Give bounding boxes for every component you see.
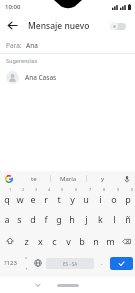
button[interactable]: s: [13, 208, 26, 230]
staticText: d: [30, 213, 36, 225]
button[interactable]: ?123: [0, 252, 20, 274]
staticText: 4: [48, 187, 51, 192]
staticText: Para:: [6, 41, 22, 50]
staticText: u: [83, 193, 89, 205]
button[interactable]: l: [107, 208, 121, 230]
staticText: n: [93, 235, 99, 247]
staticText: o: [111, 193, 117, 205]
staticText: 0: [131, 187, 134, 192]
staticText: l: [113, 213, 116, 225]
staticText: 7: [89, 187, 92, 192]
staticText: e: [30, 193, 36, 205]
button[interactable]: ES - SA: [46, 258, 94, 269]
button[interactable]: 5: [52, 186, 65, 208]
staticText: ,: [26, 263, 28, 271]
button[interactable]: Back: [0, 13, 25, 38]
button[interactable]: 9: [107, 186, 121, 208]
button[interactable]: 8: [93, 186, 107, 208]
staticText: °: [25, 256, 28, 263]
button[interactable]: c: [47, 230, 61, 252]
button[interactable]: f: [39, 208, 52, 230]
staticText: v: [66, 235, 71, 247]
staticText: b: [79, 235, 85, 247]
button[interactable]: g: [52, 208, 65, 230]
staticText: f: [44, 213, 48, 225]
button[interactable]: y: [87, 171, 119, 186]
button[interactable]: 2: [13, 186, 26, 208]
staticText: ?123: [4, 259, 17, 267]
button[interactable]: b: [75, 230, 89, 252]
staticText: María: [60, 175, 77, 183]
staticText: ES - SA: [63, 261, 78, 267]
staticText: ñ: [125, 213, 131, 225]
staticText: k: [98, 213, 103, 225]
button[interactable]: m: [103, 230, 117, 252]
staticText: 5: [61, 187, 64, 192]
button[interactable]: Hide keyboard: [33, 280, 43, 290]
staticText: w: [16, 193, 24, 205]
button[interactable]: 6: [65, 186, 79, 208]
staticText: i: [99, 193, 102, 205]
button[interactable]: Voice input: [119, 171, 135, 186]
button[interactable]: h: [65, 208, 79, 230]
staticText: c: [52, 235, 57, 247]
button[interactable]: v: [61, 230, 75, 252]
button[interactable]: 4: [39, 186, 52, 208]
staticText: y: [101, 175, 105, 183]
staticText: s: [17, 213, 22, 225]
staticText: t: [57, 193, 61, 205]
staticText: a: [4, 213, 10, 225]
staticText: m: [106, 235, 115, 247]
button[interactable]: Google: [0, 171, 18, 186]
staticText: p: [125, 193, 131, 205]
staticText: 3: [35, 187, 38, 192]
button[interactable]: x: [33, 230, 47, 252]
staticText: x: [38, 235, 43, 247]
staticText: g: [56, 213, 62, 225]
staticText: 6: [75, 187, 78, 192]
button[interactable]: Ana Casas: [0, 67, 135, 87]
staticText: j: [85, 213, 88, 225]
button[interactable]: 1: [0, 186, 13, 208]
button[interactable]: Backspace: [117, 230, 135, 252]
button[interactable]: .: [96, 252, 108, 274]
button[interactable]: a: [0, 208, 13, 230]
staticText: 10:00: [5, 3, 21, 11]
button[interactable]: Change language: [32, 252, 44, 274]
button[interactable]: 0: [121, 186, 135, 208]
staticText: Ana: [26, 41, 38, 50]
staticText: 1: [9, 187, 12, 192]
staticText: te: [31, 175, 37, 183]
button[interactable]: Shift: [0, 230, 19, 252]
staticText: Mensaje nuevo: [28, 20, 90, 32]
staticText: y: [70, 193, 75, 205]
staticText: q: [4, 193, 10, 205]
staticText: h: [69, 213, 75, 225]
button[interactable]: n: [89, 230, 103, 252]
staticText: Sugerencias: [6, 57, 38, 64]
button[interactable]: María: [51, 171, 86, 186]
staticText: 9: [117, 187, 120, 192]
button[interactable]: j: [79, 208, 93, 230]
button[interactable]: z: [19, 230, 33, 252]
staticText: z: [24, 235, 29, 247]
button[interactable]: d: [26, 208, 39, 230]
button[interactable]: 3: [26, 186, 39, 208]
button[interactable]: °: [20, 252, 32, 274]
staticText: 2: [22, 187, 25, 192]
button[interactable]: k: [93, 208, 107, 230]
button[interactable]: Enter: [110, 257, 133, 270]
button[interactable]: te: [18, 171, 50, 186]
staticText: Ana Casas: [25, 73, 57, 82]
button[interactable]: Para:: [0, 38, 135, 53]
staticText: .: [101, 259, 103, 267]
button[interactable]: Toggle: [107, 18, 129, 34]
staticText: 8: [103, 187, 106, 192]
staticText: r: [44, 193, 48, 205]
button[interactable]: ñ: [121, 208, 135, 230]
button[interactable]: 7: [79, 186, 93, 208]
